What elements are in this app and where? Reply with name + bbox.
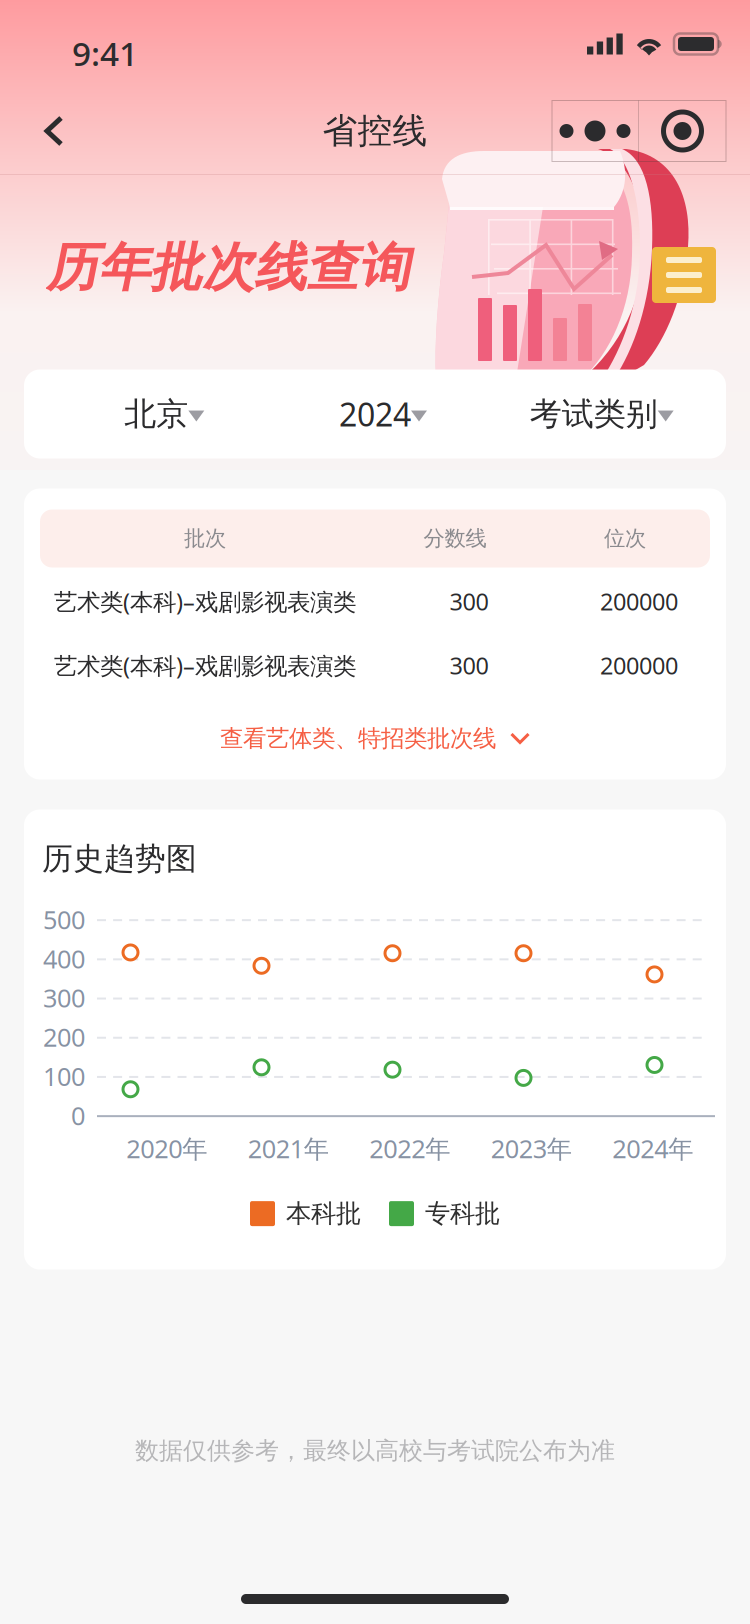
staticText: 专科批 bbox=[425, 1198, 500, 1229]
staticText: 艺术类(本科)–戏剧影视表演类 bbox=[54, 649, 356, 681]
staticText: 艺术类(本科)–戏剧影视表演类 bbox=[54, 585, 356, 617]
staticText: 省控线 bbox=[322, 109, 427, 153]
staticText: 查看艺体类、特招类批次线 bbox=[220, 724, 496, 753]
staticText: 2023年 bbox=[491, 1131, 572, 1166]
staticText: 300 bbox=[43, 980, 85, 1015]
staticText: 2024年 bbox=[612, 1131, 693, 1166]
staticText: 北京 bbox=[124, 394, 188, 434]
staticText: 2020年 bbox=[126, 1131, 207, 1166]
staticText: 500 bbox=[43, 902, 85, 937]
staticText: 300 bbox=[449, 585, 488, 617]
button[interactable]: 查看艺体类、特招类批次线 bbox=[24, 697, 726, 779]
staticText: 历史趋势图 bbox=[42, 839, 197, 878]
staticText: 2024 bbox=[339, 392, 411, 436]
button[interactable]: Close bbox=[639, 100, 726, 161]
button[interactable]: 考试类别 bbox=[484, 369, 703, 458]
staticText: 300 bbox=[449, 649, 488, 681]
staticText: 批次 bbox=[184, 525, 226, 552]
staticText: 历年批次线查询 bbox=[46, 235, 410, 300]
button[interactable]: 北京 bbox=[47, 369, 266, 458]
staticText: 2021年 bbox=[248, 1131, 329, 1166]
staticText: 2022年 bbox=[369, 1131, 450, 1166]
button[interactable]: 2024 bbox=[266, 369, 484, 458]
staticText: 400 bbox=[43, 941, 85, 976]
staticText: 本科批 bbox=[286, 1198, 361, 1229]
staticText: 数据仅供参考，最终以高校与考试院公布为准 bbox=[135, 1436, 615, 1466]
staticText: 9:41 bbox=[72, 30, 138, 76]
staticText: 200000 bbox=[600, 585, 678, 617]
staticText: 200000 bbox=[600, 649, 678, 681]
staticText: 位次 bbox=[604, 525, 646, 552]
staticText: 分数线 bbox=[423, 525, 486, 552]
staticText: 100 bbox=[43, 1059, 85, 1093]
staticText: 200 bbox=[43, 1020, 85, 1054]
staticText: 0 bbox=[71, 1098, 85, 1133]
button[interactable]: Back bbox=[0, 98, 100, 164]
button[interactable]: More bbox=[552, 100, 638, 161]
staticText: 考试类别 bbox=[530, 394, 658, 434]
